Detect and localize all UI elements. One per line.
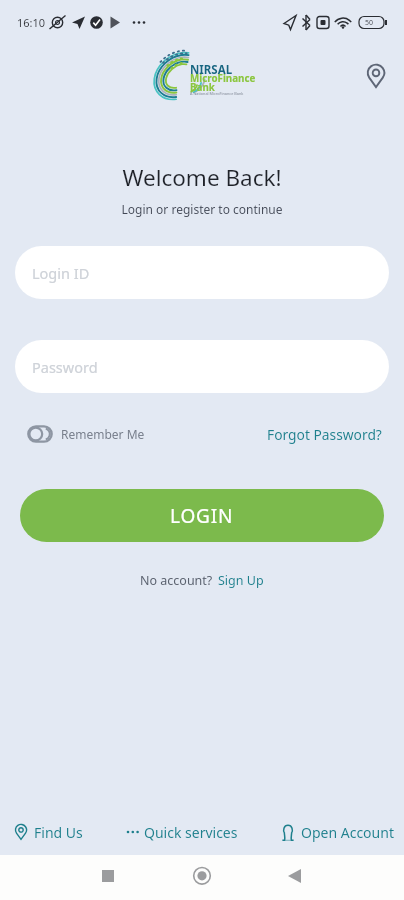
staticText: Remember Me bbox=[61, 426, 145, 442]
staticText: Login ID bbox=[32, 263, 90, 283]
button[interactable]: LOGIN bbox=[20, 489, 384, 542]
staticText: 16:10 bbox=[17, 15, 46, 30]
button[interactable]: Remember Me bbox=[27, 420, 145, 448]
staticText: Password bbox=[32, 357, 98, 377]
button[interactable]: Password bbox=[15, 340, 389, 393]
button[interactable]: Open Account bbox=[281, 812, 394, 852]
staticText: Sign Up bbox=[218, 572, 264, 589]
staticText: No account? bbox=[140, 572, 213, 589]
staticText: NIRSAL bbox=[190, 62, 233, 78]
staticText: Open Account bbox=[301, 823, 394, 842]
button[interactable]: Quick services bbox=[126, 812, 238, 852]
staticText: MicroFinance bbox=[190, 72, 256, 85]
staticText: Quick services bbox=[144, 823, 238, 842]
button[interactable]: Find branch location bbox=[358, 58, 394, 94]
staticText: Welcome Back! bbox=[0, 162, 404, 193]
staticText: Forgot Password? bbox=[267, 425, 382, 444]
staticText: Find Us bbox=[34, 823, 83, 842]
button[interactable]: Find Us bbox=[13, 812, 83, 852]
staticText: Bank bbox=[190, 81, 215, 94]
button[interactable]: Sign Up bbox=[218, 572, 264, 589]
button[interactable]: Forgot Password? bbox=[267, 420, 382, 448]
staticText: LOGIN bbox=[170, 503, 234, 529]
staticText: Login or register to continue bbox=[0, 201, 404, 217]
button[interactable]: Login ID bbox=[15, 246, 389, 299]
staticText: 50 bbox=[365, 18, 374, 28]
staticText: A National MicroFinance Bank bbox=[190, 91, 244, 96]
